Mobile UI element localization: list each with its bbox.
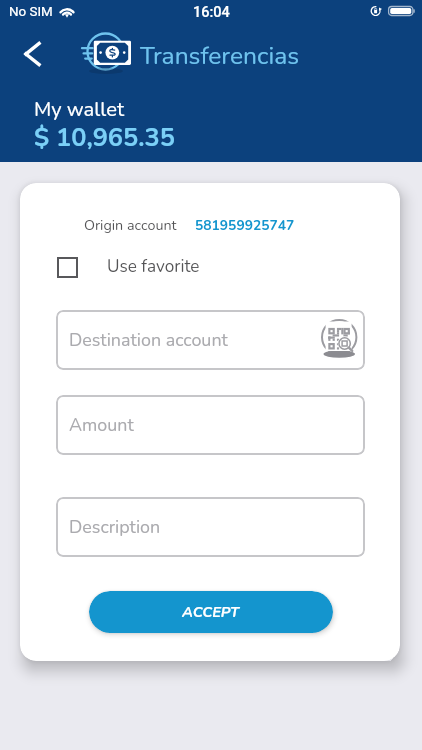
button[interactable]: Description bbox=[56, 497, 365, 557]
button[interactable]: Back bbox=[14, 36, 50, 72]
staticText: Use favorite bbox=[107, 255, 200, 278]
staticText: 16:04 bbox=[193, 4, 230, 21]
staticText: 581959925747 bbox=[195, 216, 295, 235]
staticText: $ 10,965.35 bbox=[34, 120, 175, 155]
button[interactable]: Destination account bbox=[56, 310, 365, 370]
staticText: My wallet bbox=[34, 96, 124, 124]
staticText: No SIM bbox=[9, 4, 53, 20]
staticText: Origin account bbox=[84, 216, 177, 236]
button[interactable]: Scan QR code bbox=[318, 316, 360, 360]
staticText: Transferencias bbox=[140, 39, 300, 73]
staticText: Description bbox=[69, 515, 161, 539]
staticText: Destination account bbox=[69, 328, 228, 352]
button[interactable]: ACCEPT bbox=[89, 591, 333, 633]
staticText: ACCEPT bbox=[182, 602, 240, 622]
button[interactable]: Amount bbox=[56, 395, 365, 455]
staticText: Amount bbox=[69, 413, 134, 437]
button[interactable]: Use favorite bbox=[57, 255, 200, 278]
